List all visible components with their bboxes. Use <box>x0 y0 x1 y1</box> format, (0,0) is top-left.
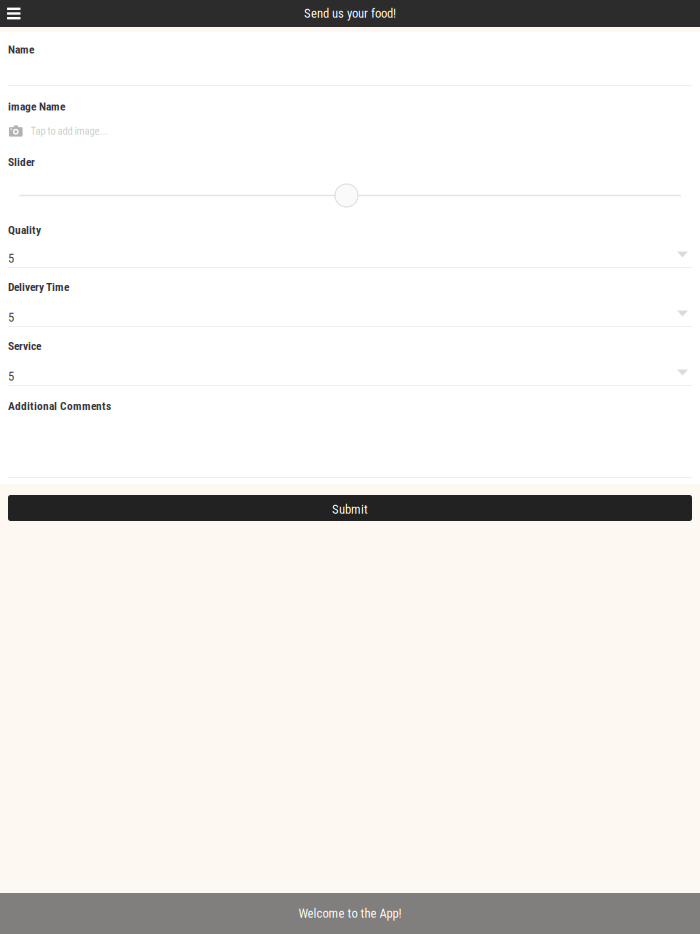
staticText: 5 <box>8 251 14 266</box>
staticText: Slider <box>8 155 35 169</box>
staticText: Delivery Time <box>8 280 69 294</box>
button[interactable]: Menu <box>0 0 28 27</box>
button[interactable]: 5 <box>8 309 692 326</box>
staticText: 5 <box>8 369 14 384</box>
staticText: Send us your food! <box>304 6 396 21</box>
button[interactable]: Tap to add image... <box>8 124 692 137</box>
staticText: Name <box>8 43 34 56</box>
button[interactable]: 5 <box>8 250 692 267</box>
staticText: image Name <box>8 100 65 113</box>
staticText: Welcome to the App! <box>298 906 401 921</box>
staticText: Quality <box>8 223 41 237</box>
staticText: Submit <box>332 502 368 517</box>
staticText: Additional Comments <box>8 399 111 413</box>
button[interactable]: Submit <box>8 495 692 521</box>
staticText: 5 <box>8 310 14 325</box>
staticText: Tap to add image... <box>31 125 109 137</box>
staticText: Service <box>8 339 41 353</box>
button[interactable]: 5 <box>8 368 692 385</box>
